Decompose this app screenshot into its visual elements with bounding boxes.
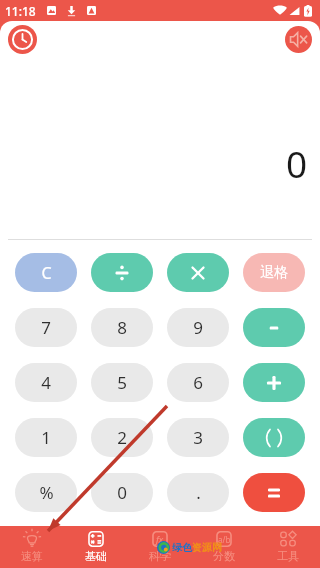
button[interactable]: fx	[128, 526, 192, 563]
staticText: 9	[193, 316, 203, 339]
staticText: %	[39, 481, 54, 504]
staticText: 6	[193, 371, 203, 394]
button[interactable]: 工具	[256, 526, 320, 563]
staticText: 科学	[149, 549, 171, 563]
staticText: 5	[117, 371, 127, 394]
button[interactable]: Mute	[285, 26, 312, 53]
staticText: 工具	[277, 549, 299, 563]
button[interactable]: 5	[91, 363, 153, 402]
staticText: fx	[156, 533, 164, 545]
button[interactable]: C	[15, 253, 77, 292]
button[interactable]: 6	[167, 363, 229, 402]
button[interactable]: 基础	[64, 526, 128, 563]
button[interactable]: +	[243, 363, 305, 402]
staticText: 4	[41, 371, 51, 394]
button[interactable]: a/b	[192, 526, 256, 563]
staticText: .	[196, 481, 201, 504]
button[interactable]: History	[8, 25, 37, 54]
staticText: 1	[41, 426, 51, 449]
staticText: 8	[117, 316, 127, 339]
button[interactable]: 4	[15, 363, 77, 402]
button[interactable]: 2	[91, 418, 153, 457]
staticText: 2	[117, 426, 127, 449]
staticText: 11:18	[5, 3, 36, 19]
staticText: 3	[193, 426, 203, 449]
staticText: 0	[117, 481, 127, 504]
button[interactable]: =	[243, 473, 305, 512]
staticText: 基础	[85, 549, 107, 563]
button[interactable]: 速算	[0, 526, 64, 563]
staticText: 资源网	[192, 541, 222, 554]
staticText: C	[41, 262, 52, 284]
button[interactable]: 8	[91, 308, 153, 347]
button[interactable]: 0	[91, 473, 153, 512]
staticText: 7	[41, 316, 51, 339]
button[interactable]: .	[167, 473, 229, 512]
button[interactable]: -	[243, 308, 305, 347]
button[interactable]: ×	[167, 253, 229, 292]
staticText: 退格	[260, 264, 288, 282]
button[interactable]: ÷	[91, 253, 153, 292]
button[interactable]: 7	[15, 308, 77, 347]
button[interactable]: 9	[167, 308, 229, 347]
button[interactable]: 1	[15, 418, 77, 457]
button[interactable]: %	[15, 473, 77, 512]
button[interactable]: 退格	[243, 253, 305, 292]
staticText: 速算	[21, 549, 43, 563]
button[interactable]: ( )	[243, 418, 305, 457]
staticText: a/b	[218, 534, 231, 545]
staticText: 0	[286, 138, 308, 188]
button[interactable]: 3	[167, 418, 229, 457]
staticText: 分数	[213, 549, 235, 563]
staticText: 绿色	[172, 541, 192, 554]
